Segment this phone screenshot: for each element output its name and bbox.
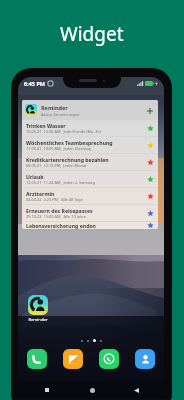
button[interactable]: Recents bbox=[39, 382, 55, 398]
staticText: Lebensversicherung enden bbox=[26, 222, 96, 229]
button[interactable]: Phone bbox=[27, 349, 47, 369]
staticText: Arzttermin bbox=[26, 190, 55, 197]
staticText: 10.05.21 12:30 AM, Jede Stunde (Mo.-Fr.) bbox=[26, 129, 101, 134]
staticText: Widget bbox=[60, 21, 124, 47]
staticText: 6:45 PM bbox=[24, 80, 46, 87]
staticText: Wöchentliches Teambesprechung bbox=[26, 139, 113, 146]
button[interactable]: Messages bbox=[63, 349, 83, 369]
button[interactable]: Back bbox=[128, 382, 144, 398]
staticText: 29.10.23 13:00 AM, Alle 10 Jahre bbox=[26, 214, 87, 219]
button[interactable]: Kreditkartenrechnung bezahlen bbox=[22, 154, 158, 170]
staticText: Reminder bbox=[28, 317, 48, 323]
staticText: 11.05.21 10:00 AM, Jeden Dienstag bbox=[26, 146, 92, 151]
staticText: 08.06.21 12:15 PM, Jeden Monat bbox=[26, 163, 87, 168]
button[interactable]: Reminder bbox=[22, 100, 158, 120]
staticText: Trinken Wasser bbox=[26, 122, 66, 129]
button[interactable]: Trinken Wasser bbox=[22, 120, 158, 136]
staticText: Aktive Erinnerungen bbox=[41, 112, 80, 117]
button[interactable]: Add reminder bbox=[144, 105, 155, 116]
button[interactable]: Urlaub bbox=[22, 171, 158, 187]
staticText: Urlaub bbox=[26, 173, 44, 180]
button[interactable]: Arzttermin bbox=[22, 188, 158, 204]
button[interactable]: Lebensversicherung enden bbox=[22, 222, 158, 229]
button[interactable]: Reminder bbox=[22, 295, 54, 323]
staticText: Erneuern des Reisepasses bbox=[26, 207, 93, 214]
button[interactable]: Wöchentliches Teambesprechung bbox=[22, 137, 158, 153]
button[interactable]: WhatsApp bbox=[99, 349, 119, 369]
button[interactable]: Erneuern des Reisepasses bbox=[22, 205, 158, 221]
staticText: Kreditkartenrechnung bezahlen bbox=[26, 156, 109, 163]
button[interactable]: Home bbox=[84, 382, 100, 398]
staticText: Reminder bbox=[41, 104, 68, 111]
staticText: 12.05.21 11:24 AM, Jeden 2. Samstag bbox=[26, 180, 95, 185]
staticText: 04.04.22 2:23 PM, Alle 48 Tage bbox=[26, 197, 83, 202]
button[interactable]: Contacts bbox=[135, 349, 155, 369]
